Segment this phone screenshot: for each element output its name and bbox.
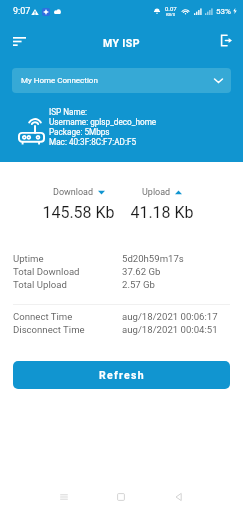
staticText: aug/18/2021 00:06:17 [122,311,218,322]
staticText: 2.57 Gb [122,279,156,290]
staticText: 5d20h59m17s [122,253,184,264]
staticText: My Home Connection [21,76,98,85]
staticText: MY ISP [103,37,140,49]
staticText: 9:07 [13,6,31,17]
button[interactable]: Recents [35,481,92,512]
staticText: Connect Time [13,311,122,322]
staticText: ISP Name: [49,107,88,117]
staticText: Upload [142,187,171,198]
staticText: 0.07 [165,5,177,12]
staticText: 53% [216,7,231,16]
staticText: 37.62 Gb [122,266,161,277]
staticText: Mac: 40:3F:8C:F7:AD:F5 [49,137,137,147]
staticText: Total Download [13,266,122,277]
staticText: 41.18 Kb [120,203,204,222]
staticText: Download [53,187,94,198]
staticText: Total Upload [13,279,122,290]
staticText: aug/18/2021 00:04:51 [122,324,218,335]
button[interactable]: Upload [142,187,182,198]
button[interactable]: Logout [210,27,240,57]
staticText: Refresh [99,369,145,381]
staticText: 145.58 Kb [37,203,120,222]
button[interactable]: Refresh [13,361,230,389]
button[interactable]: Menu [4,27,34,57]
button[interactable]: Download [53,187,105,198]
button[interactable]: My Home Connection [12,68,231,93]
button[interactable]: Back [150,481,208,512]
button[interactable]: Home [92,481,150,512]
staticText: Uptime [13,253,122,264]
staticText: Disconnect Time [13,324,122,335]
staticText: Username: gplsp_deco_home [49,117,157,127]
staticText: Package: 5Mbps [49,127,110,137]
staticText: KB/S [166,12,176,17]
